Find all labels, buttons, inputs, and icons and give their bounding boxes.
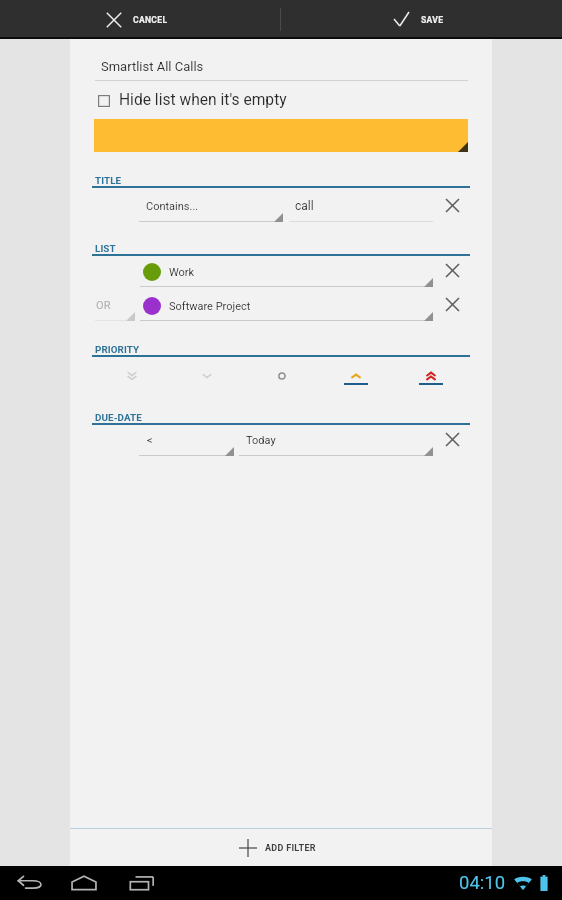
- staticText: TITLE: [95, 175, 122, 186]
- button[interactable]: Priority level 1: [94, 356, 169, 392]
- staticText: SAVE: [421, 15, 444, 25]
- button[interactable]: OR: [95, 293, 135, 321]
- button[interactable]: ADD FILTER: [70, 829, 492, 866]
- button[interactable]: Hide list when it's empty: [94, 90, 294, 110]
- staticText: LIST: [95, 243, 116, 254]
- button[interactable]: call: [289, 194, 433, 222]
- button[interactable]: Contains...: [139, 194, 283, 222]
- staticText: Smartlist All Calls: [101, 59, 204, 74]
- button[interactable]: CANCEL: [0, 0, 277, 39]
- button[interactable]: Back: [2, 866, 58, 900]
- button[interactable]: Priority level 3: [244, 356, 319, 392]
- button[interactable]: Remove filter: [438, 425, 466, 453]
- button[interactable]: Priority level 4: [318, 356, 393, 392]
- button[interactable]: Priority level 2: [169, 356, 244, 392]
- button[interactable]: Remove filter: [438, 191, 466, 219]
- staticText: CANCEL: [133, 15, 168, 25]
- staticText: OR: [96, 299, 111, 312]
- button[interactable]: Priority level 5: [393, 356, 468, 392]
- staticText: PRIORITY: [95, 344, 140, 355]
- button[interactable]: [94, 119, 468, 152]
- button[interactable]: Home: [56, 866, 112, 900]
- staticText: call: [295, 199, 314, 213]
- staticText: 04:10: [459, 872, 506, 894]
- button[interactable]: SAVE: [278, 0, 559, 39]
- staticText: Contains...: [146, 200, 199, 213]
- button[interactable]: Recent apps: [114, 866, 170, 900]
- staticText: ADD FILTER: [265, 843, 316, 854]
- staticText: Work: [169, 266, 195, 279]
- staticText: DUE-DATE: [95, 412, 142, 423]
- staticText: Today: [246, 434, 276, 447]
- staticText: <: [147, 434, 153, 447]
- button[interactable]: <: [139, 428, 234, 456]
- button[interactable]: Work: [140, 258, 433, 287]
- staticText: Hide list when it's empty: [119, 91, 287, 109]
- button[interactable]: Remove filter: [438, 290, 466, 318]
- button[interactable]: Today: [239, 428, 433, 456]
- button[interactable]: Remove filter: [438, 256, 466, 284]
- button[interactable]: Software Project: [140, 292, 433, 321]
- staticText: Software Project: [169, 300, 251, 313]
